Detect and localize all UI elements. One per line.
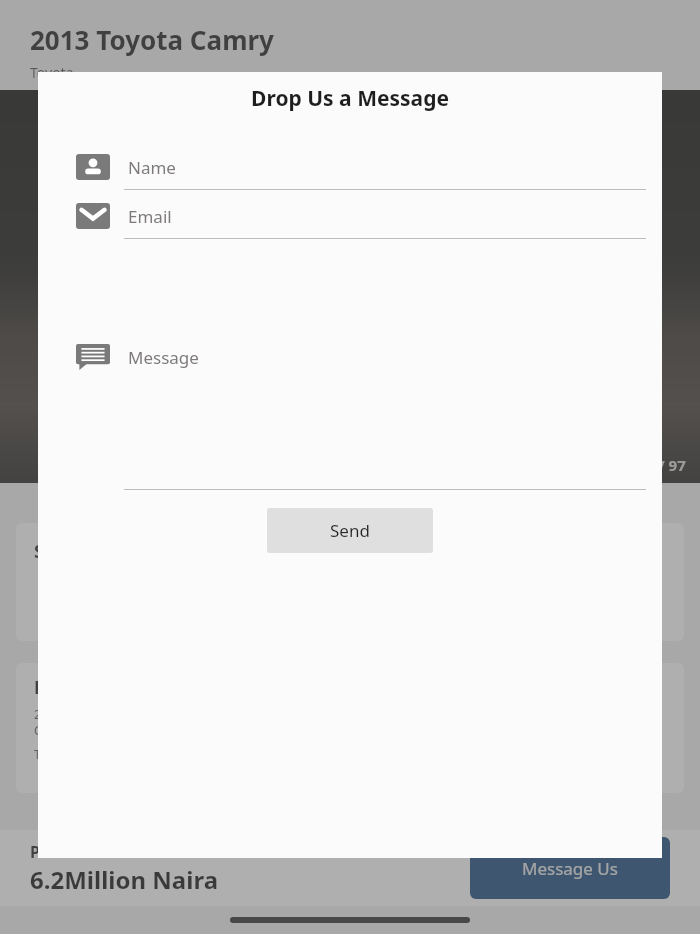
staticText: 2013 Toyota Camry [34, 706, 142, 722]
staticText: Drop Us a Message [38, 84, 662, 113]
other: Email [76, 203, 110, 229]
staticText: Tokunbo [34, 746, 83, 762]
other: Message [76, 344, 110, 370]
button[interactable]: Message [124, 335, 646, 379]
button[interactable]: Specification [16, 523, 684, 641]
staticText: 6.2Million Naira [30, 863, 219, 896]
other: Name [76, 154, 110, 180]
staticText: Toyota [30, 63, 74, 82]
staticText: Message [128, 346, 199, 369]
button[interactable]: Name [124, 145, 646, 189]
staticText: Description [34, 675, 138, 700]
staticText: Message Us [522, 857, 618, 880]
staticText: Specification [34, 539, 150, 564]
staticText: Name [128, 156, 176, 179]
staticText: Clean title, well maintained [34, 722, 187, 738]
button[interactable]: Message Us [470, 837, 670, 899]
button[interactable]: Send [267, 508, 433, 553]
staticText: 2013 Toyota Camry [30, 22, 274, 57]
staticText: Email [128, 205, 172, 228]
button[interactable]: Description [16, 663, 684, 793]
staticText: Price [30, 841, 70, 863]
staticText: 1 / 97 [646, 455, 686, 475]
staticText: Send [330, 519, 370, 542]
button[interactable]: Email [124, 194, 646, 238]
